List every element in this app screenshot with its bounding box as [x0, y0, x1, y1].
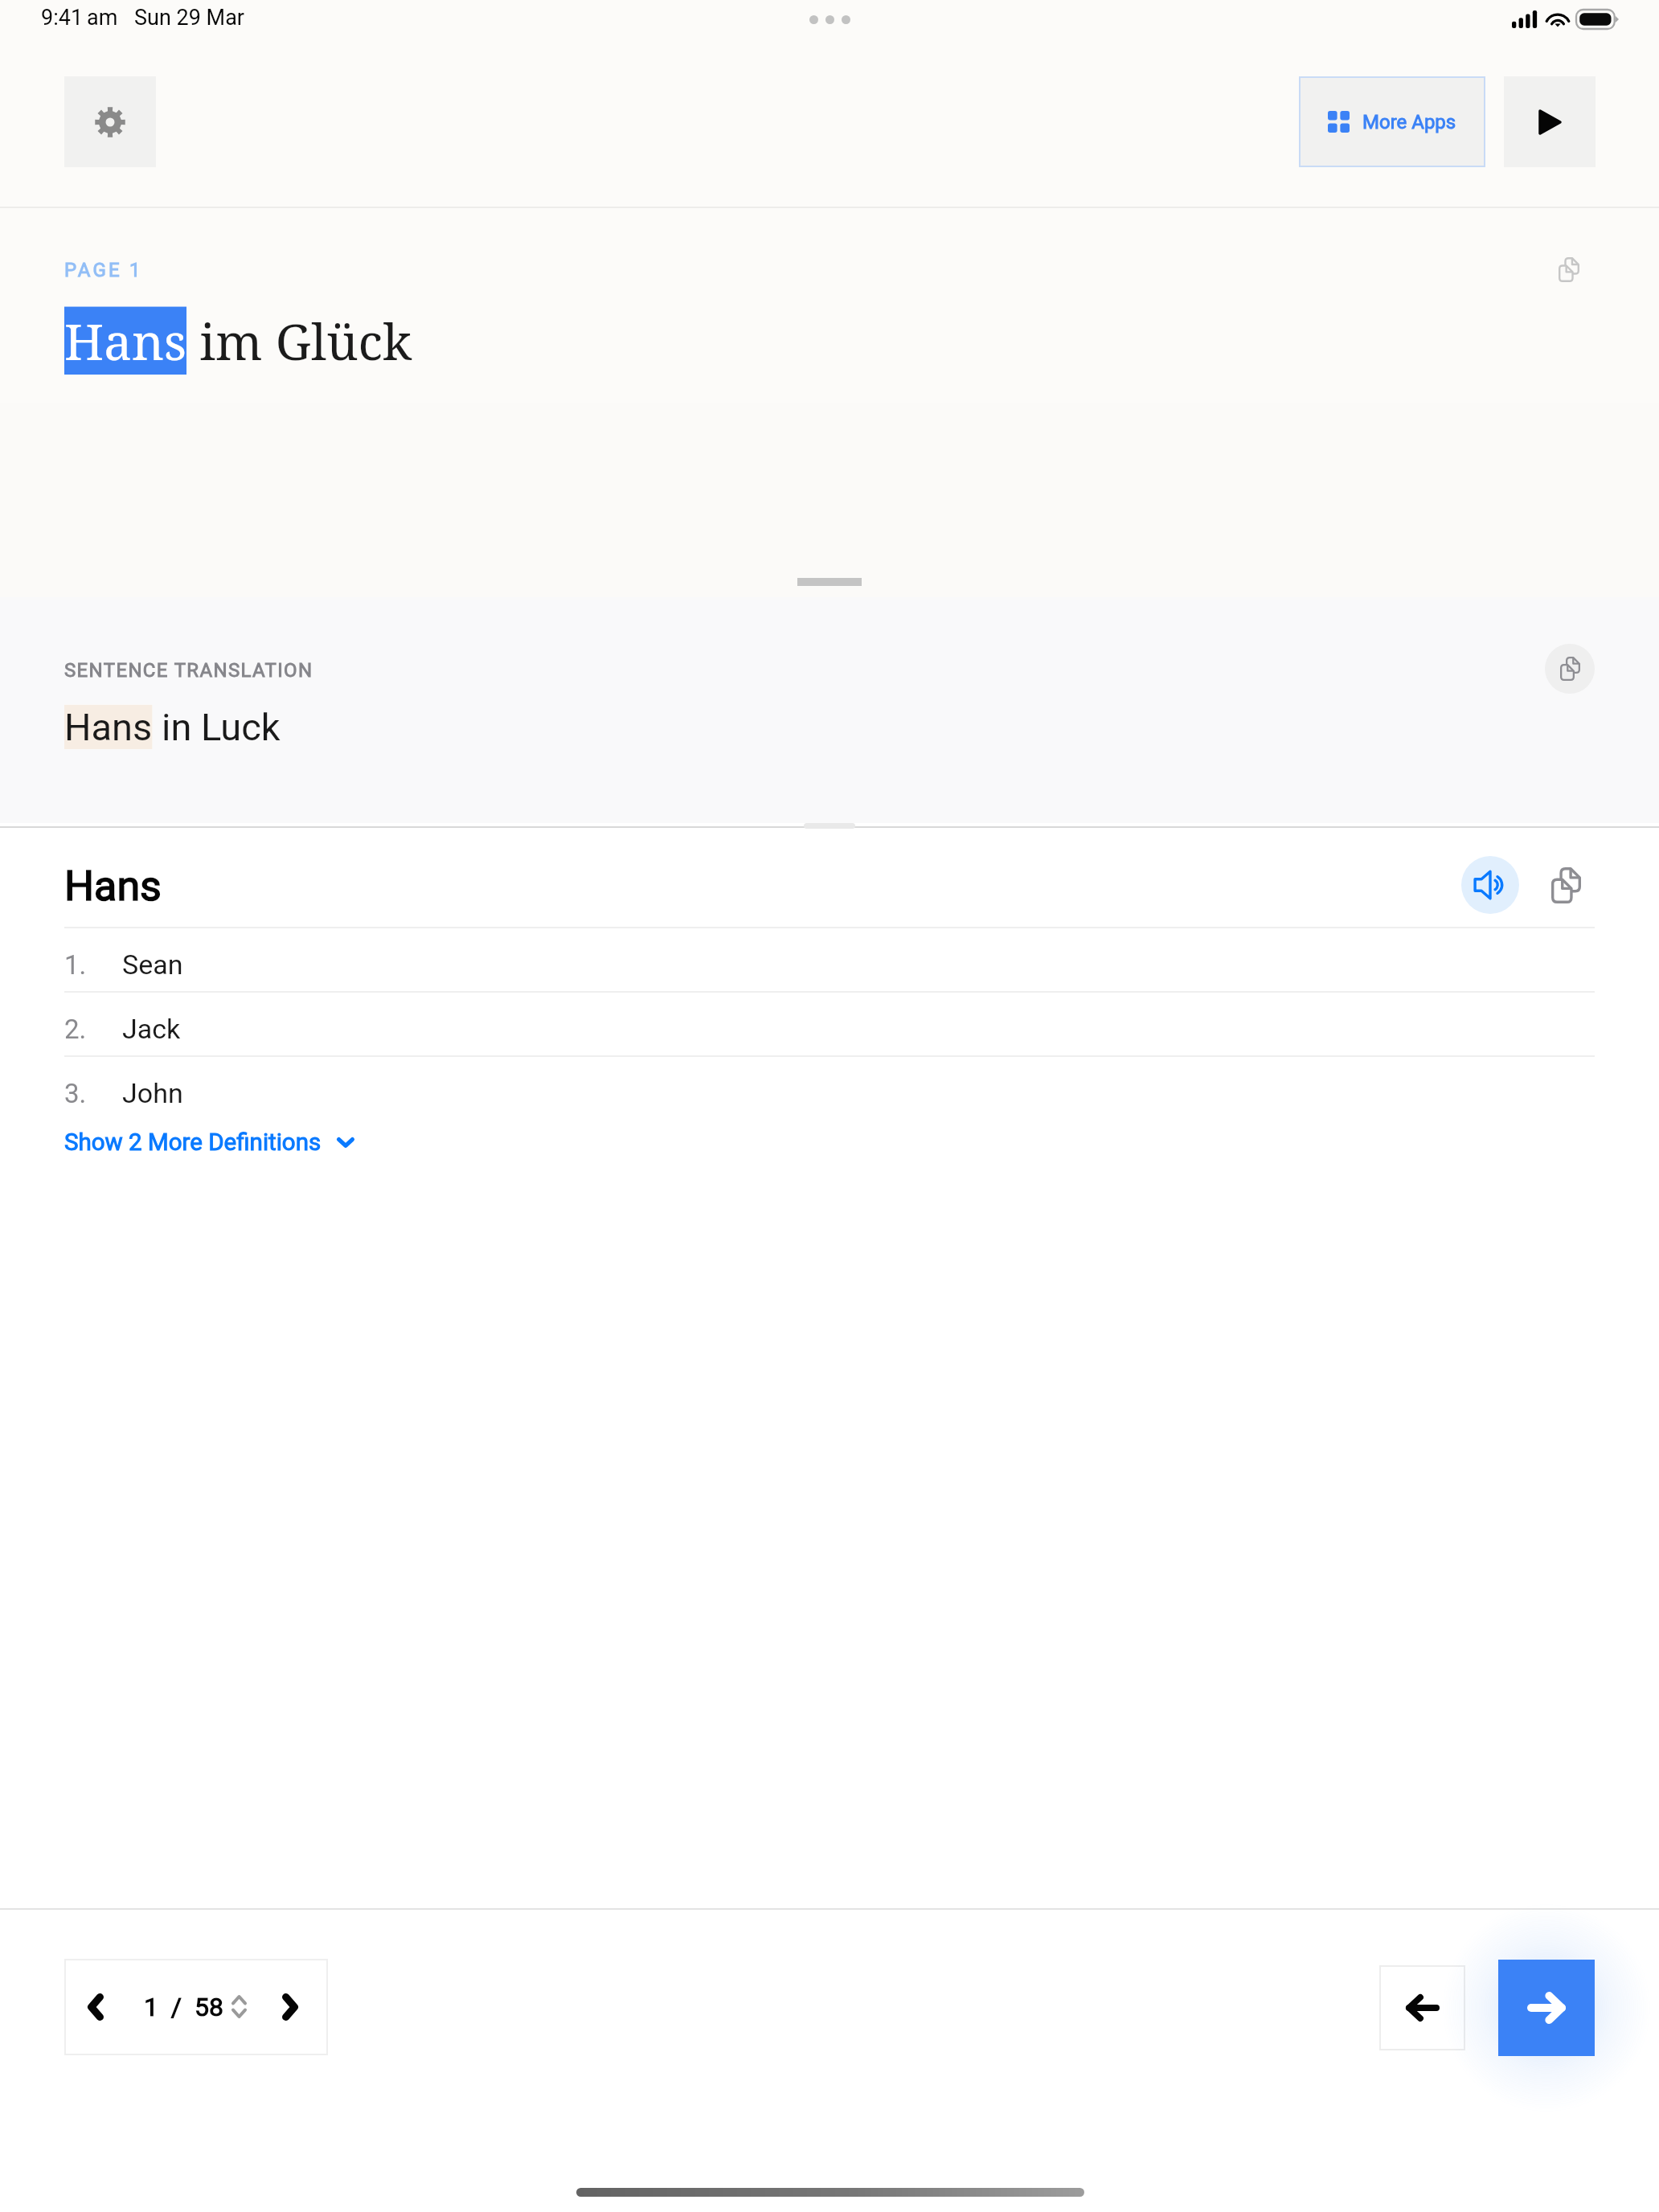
button[interactable]: 1. — [64, 928, 1595, 991]
button[interactable]: Copy sentence — [1546, 247, 1591, 292]
staticText: 1. — [64, 949, 87, 981]
staticText: Hans — [64, 862, 162, 911]
staticText: Hans im Glück — [64, 307, 412, 375]
button[interactable]: Play — [1504, 76, 1596, 167]
staticText: Sean — [122, 948, 183, 981]
button[interactable]: More Apps — [1299, 76, 1485, 167]
button[interactable]: Copy word — [1537, 856, 1595, 914]
staticText: Jack — [122, 1013, 181, 1045]
staticText: PAGE 1 — [64, 259, 143, 281]
staticText: 1 / 58 — [144, 1992, 223, 2022]
staticText: Hans in Luck — [64, 705, 281, 749]
staticText: 9:41 — [41, 5, 84, 31]
staticText: 2. — [64, 1014, 87, 1045]
staticText: More Apps — [1362, 111, 1456, 133]
staticText: am — [87, 5, 118, 31]
staticText: 3. — [64, 1078, 87, 1109]
button[interactable]: Next page — [266, 1980, 314, 2034]
staticText: Show 2 More Definitions — [64, 1129, 322, 1157]
button[interactable]: Settings — [64, 76, 156, 167]
button[interactable]: Next page — [1498, 1960, 1595, 2056]
button[interactable]: Copy translation — [1545, 644, 1595, 694]
button[interactable]: Previous page — [1379, 1965, 1465, 2050]
button[interactable]: 1 / 58 — [137, 1980, 257, 2034]
staticText: SENTENCE TRANSLATION — [64, 659, 313, 682]
button[interactable]: 2. — [64, 993, 1595, 1055]
staticText: Sun 29 Mar — [134, 5, 244, 31]
staticText: John — [122, 1077, 183, 1109]
button[interactable]: Listen — [1461, 856, 1519, 914]
button[interactable]: 3. — [64, 1057, 1595, 1120]
button[interactable]: Show 2 More Definitions — [64, 1118, 354, 1166]
button[interactable]: Previous page — [72, 1980, 120, 2034]
